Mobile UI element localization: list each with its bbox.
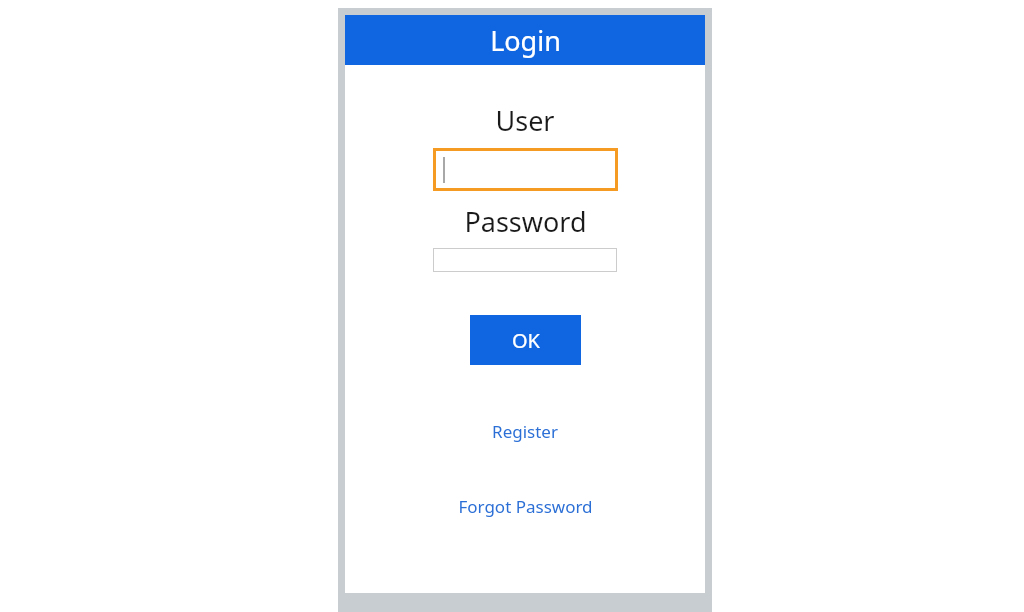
staticText: Login [490,22,561,59]
staticText: Password [464,203,587,240]
staticText: Register [492,420,558,443]
button[interactable] [433,148,618,191]
button[interactable]: Register [484,418,566,445]
button[interactable]: Forgot Password [450,493,601,520]
button[interactable] [433,248,617,272]
button[interactable]: OK [470,315,581,365]
staticText: OK [512,327,540,354]
staticText: Forgot Password [458,495,593,518]
staticText: User [495,102,555,139]
